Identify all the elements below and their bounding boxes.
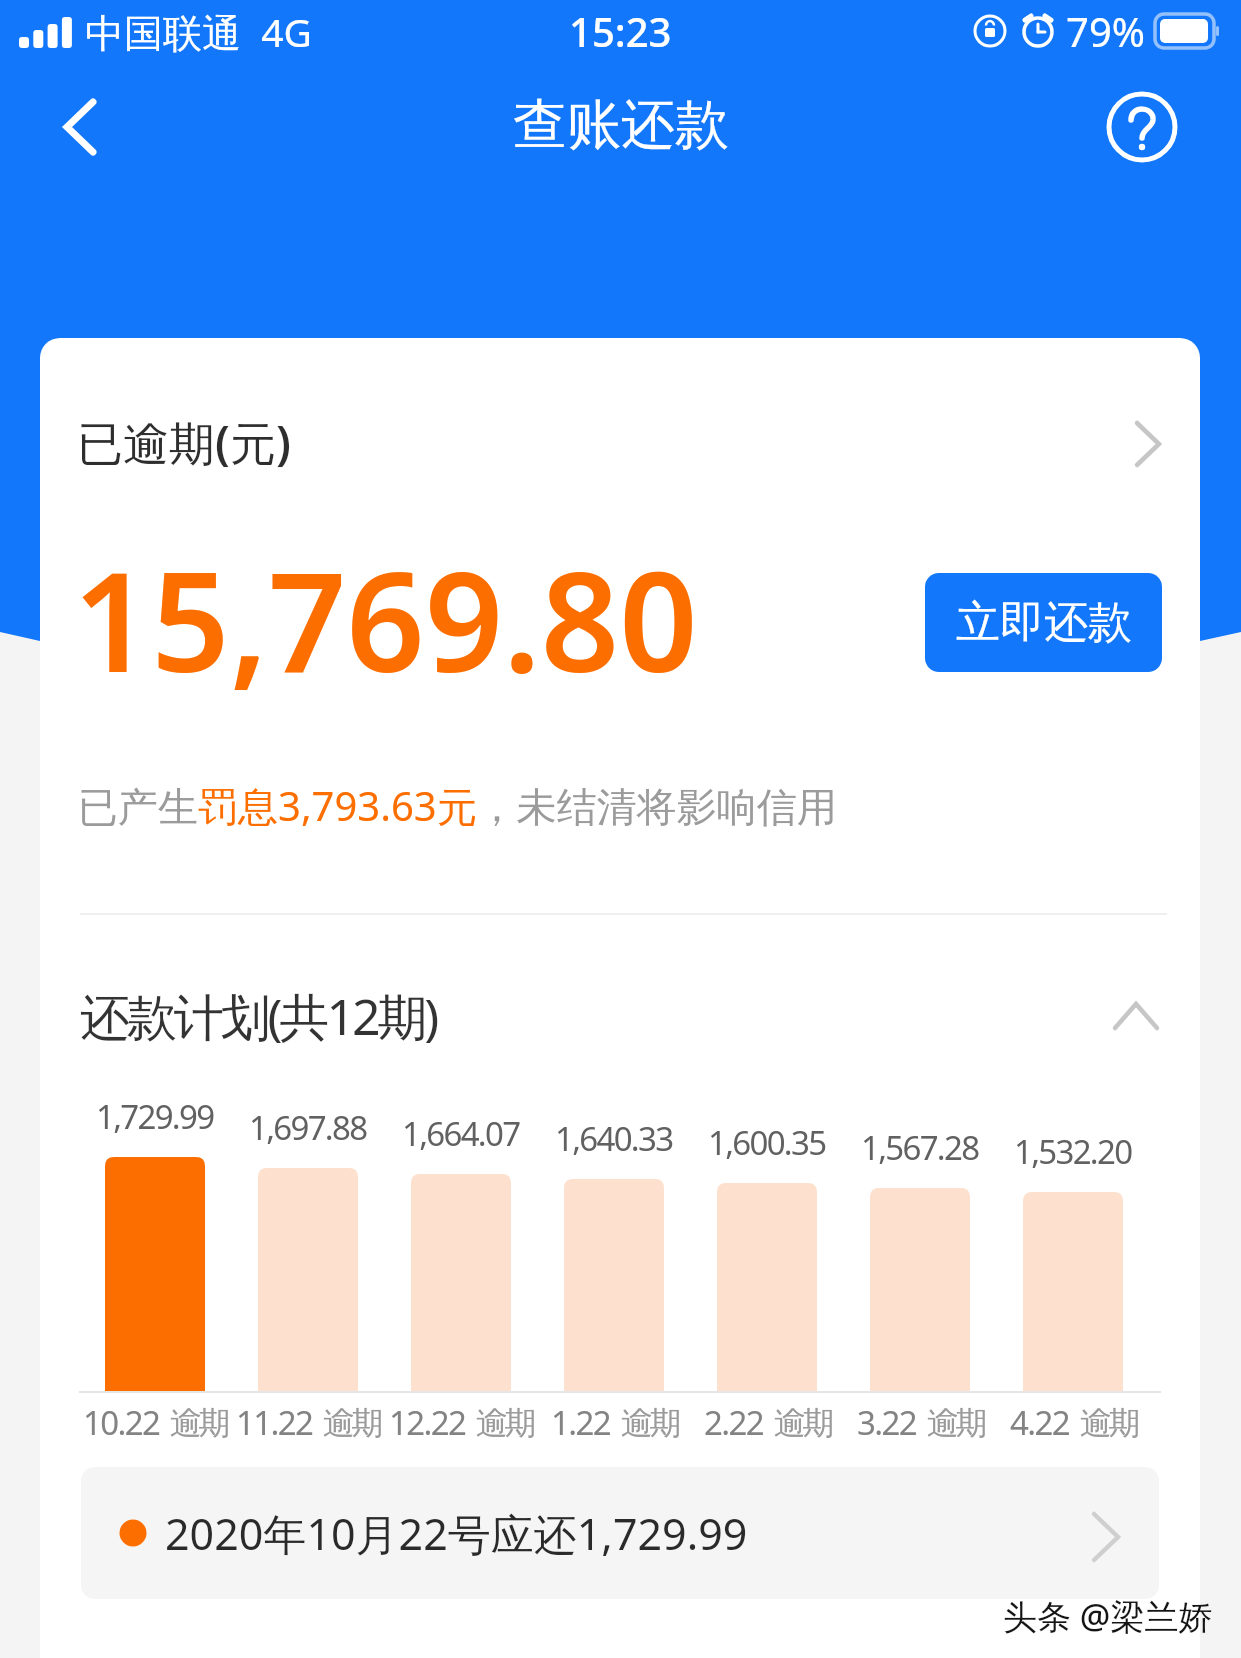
staticText: 已产生罚息3,793.63元，未结清将影响信用	[78, 778, 837, 833]
staticText: 15,769.80	[73, 526, 698, 713]
staticText: 逾期	[1080, 1403, 1137, 1443]
staticText: 1,729.99	[96, 1094, 214, 1139]
staticText: 1,697.88	[249, 1105, 367, 1150]
staticText: 4.22	[1010, 1400, 1070, 1445]
staticText: 1,567.28	[861, 1125, 979, 1170]
staticText: 逾期	[476, 1403, 533, 1443]
staticText: 15:23	[569, 4, 672, 58]
staticText: 1.22	[551, 1400, 611, 1445]
staticText: 还款计划(共12期)	[80, 982, 437, 1050]
staticText: 2020年10月22号应还1,729.99	[165, 1504, 748, 1563]
staticText: 逾期	[323, 1403, 380, 1443]
staticText: 12.22	[389, 1400, 466, 1445]
staticText: 3.22	[857, 1400, 917, 1445]
staticText: 1,640.33	[555, 1116, 673, 1161]
staticText: 已逾期(元)	[77, 411, 291, 474]
staticText: 中国联通 4G	[85, 5, 312, 58]
button[interactable]: Help	[1104, 89, 1180, 165]
staticText: 79%	[1066, 4, 1145, 58]
staticText: 逾期	[170, 1403, 227, 1443]
staticText: 1,532.20	[1014, 1129, 1132, 1174]
staticText: 逾期	[774, 1403, 831, 1443]
button[interactable]: 立即还款	[925, 573, 1162, 672]
button[interactable]: Back	[40, 87, 120, 167]
staticText: 头条 @梁兰娇	[1003, 1593, 1213, 1639]
staticText: 2.22	[704, 1400, 764, 1445]
staticText: 逾期	[927, 1403, 984, 1443]
staticText: 逾期	[621, 1403, 678, 1443]
staticText: 11.22	[236, 1400, 313, 1445]
button[interactable]: Collapse repayment plan	[40, 958, 1200, 1078]
staticText: 10.22	[83, 1400, 160, 1445]
staticText: 1,600.35	[708, 1120, 826, 1165]
staticText: 立即还款	[956, 595, 1132, 650]
staticText: 1,664.07	[402, 1111, 520, 1156]
staticText: 查账还款	[513, 91, 729, 159]
button[interactable]: Overdue details	[1110, 406, 1186, 482]
button[interactable]: 2020年10月22号应还1,729.99	[81, 1467, 1159, 1599]
